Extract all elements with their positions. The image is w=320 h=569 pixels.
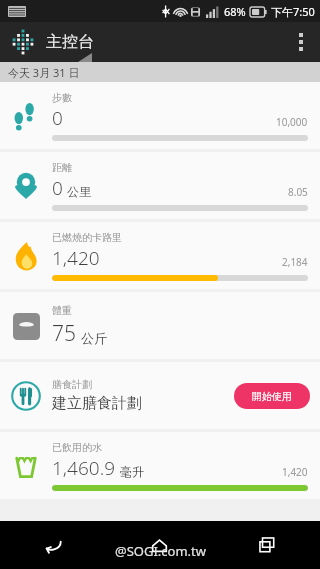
staticText: 距離 [52,161,72,174]
button[interactable]: 距離 [0,152,320,219]
staticText: 今天 3月 31 日 [8,65,80,80]
staticText: 開始使用 [252,390,292,403]
button[interactable]: 步數 [0,82,320,149]
staticText: 建立膳食計劃 [52,394,142,413]
staticText: 2,184 [282,255,308,269]
button[interactable]: Back [0,521,106,569]
button[interactable]: 開始使用 [234,383,310,409]
button[interactable]: Recent apps [213,521,320,569]
staticText: 公斤 [81,330,107,346]
staticText: 公里 [67,184,91,199]
staticText: @SOGI.com.tw [115,542,206,560]
staticText: 1,420 [52,245,100,271]
button[interactable]: More options [282,22,320,62]
staticText: 75 [52,319,76,348]
button[interactable]: Home [106,521,213,569]
staticText: 毫升 [120,464,144,479]
staticText: 步數 [52,91,72,104]
staticText: 已燃燒的卡路里 [52,231,122,244]
button[interactable]: 膳食計劃 [0,362,320,429]
staticText: 0 [52,105,63,131]
staticText: 10,000 [276,115,308,129]
staticText: 1,460.9 [52,455,116,481]
staticText: 1,420 [282,465,308,479]
button[interactable]: 已燃燒的卡路里 [0,222,320,289]
staticText: 下午7:50 [271,4,315,19]
staticText: 68% [224,4,246,19]
staticText: 主控台 [46,32,94,52]
button[interactable]: 已飲用的水 [0,432,320,499]
button[interactable]: App logo [10,29,36,55]
button[interactable]: 體重 [0,292,320,359]
staticText: 8.05 [288,185,308,199]
staticText: 已飲用的水 [52,441,102,454]
staticText: 膳食計劃 [52,378,92,391]
staticText: 體重 [52,304,72,317]
staticText: 0 [52,175,63,201]
